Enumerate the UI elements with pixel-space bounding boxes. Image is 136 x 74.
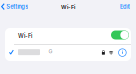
staticText: Edit	[120, 3, 130, 10]
button[interactable]: G	[5, 44, 131, 61]
button[interactable]: Settings	[1, 3, 35, 10]
staticText: Wi-Fi	[61, 4, 75, 10]
staticText: Wi-Fi	[18, 33, 32, 39]
button[interactable]: Edit	[106, 3, 130, 10]
staticText: G	[48, 48, 52, 55]
button[interactable]: Wi-Fi	[5, 28, 131, 44]
staticText: Settings	[6, 3, 28, 10]
